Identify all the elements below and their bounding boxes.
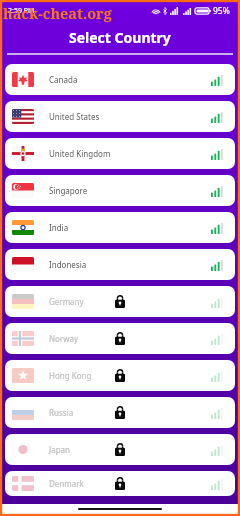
staticText: Canada [49, 74, 78, 85]
other: Locked [115, 443, 125, 456]
staticText: 2:59 PM [8, 6, 35, 16]
staticText: Japan [49, 444, 71, 455]
staticText: 95% [213, 5, 230, 17]
staticText: United States [49, 111, 100, 122]
button[interactable]: Germany [5, 286, 235, 317]
other: Locked [115, 477, 125, 490]
staticText: Indonesia [49, 259, 87, 270]
staticText: Hong Kong [49, 370, 92, 381]
other: Locked [115, 295, 125, 308]
staticText: Norway [49, 333, 79, 344]
button[interactable]: Japan [5, 434, 235, 465]
button[interactable]: Denmark [5, 471, 235, 496]
button[interactable]: Russia [5, 397, 235, 428]
other: Locked [115, 406, 125, 419]
staticText: Denmark [49, 478, 84, 489]
button[interactable]: Hong Kong [5, 360, 235, 391]
staticText: United Kingdom [49, 148, 111, 159]
staticText: Select Country [69, 28, 171, 47]
staticText: India [49, 222, 69, 233]
button[interactable]: Indonesia [5, 249, 235, 280]
button[interactable]: Norway [5, 323, 235, 354]
staticText: hack-cheat.org [3, 3, 112, 23]
other: Locked [115, 369, 125, 382]
button[interactable]: Canada [5, 64, 235, 95]
staticText: Singapore [49, 185, 88, 196]
staticText: Germany [49, 296, 84, 307]
staticText: Russia [49, 407, 74, 418]
other: Locked [115, 332, 125, 345]
button[interactable]: Singapore [5, 175, 235, 206]
button[interactable]: United Kingdom [5, 138, 235, 169]
button[interactable]: United States [5, 101, 235, 132]
button[interactable]: India [5, 212, 235, 243]
